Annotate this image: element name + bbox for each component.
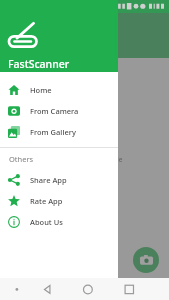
button[interactable]: From Camera: [0, 100, 118, 121]
button[interactable]: From Gallery: [0, 121, 118, 142]
button[interactable]: Camera: [133, 247, 159, 273]
staticText: From Gallery: [30, 127, 76, 137]
staticText: File: [112, 155, 123, 164]
staticText: Home: [30, 85, 52, 95]
staticText: FastScanner: [8, 57, 70, 71]
button[interactable]: Share App: [0, 169, 118, 190]
button[interactable]: Rate App: [0, 190, 118, 211]
staticText: Rate App: [30, 196, 63, 206]
staticText: Others: [9, 154, 34, 164]
staticText: Share App: [30, 175, 67, 185]
button[interactable]: Home: [0, 79, 118, 100]
button[interactable]: About Us: [0, 211, 118, 232]
staticText: About Us: [30, 217, 63, 227]
staticText: From Camera: [30, 106, 79, 116]
